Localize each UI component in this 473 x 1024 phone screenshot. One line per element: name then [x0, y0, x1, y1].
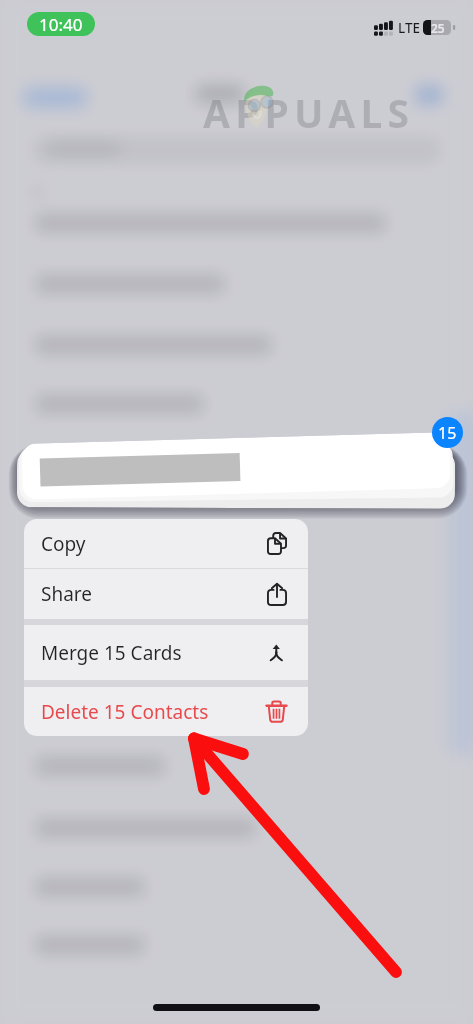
- staticText: Merge 15 Cards: [41, 640, 182, 666]
- button[interactable]: Copy: [24, 519, 308, 568]
- staticText: Copy: [41, 531, 86, 557]
- staticText: 15: [438, 422, 457, 444]
- button[interactable]: Merge 15 Cards: [24, 625, 308, 680]
- other: 15 selected: [432, 417, 463, 448]
- staticText: Delete 15 Contacts: [41, 699, 209, 725]
- staticText: APPUALS: [203, 86, 415, 139]
- staticText: 10:40: [39, 13, 83, 36]
- staticText: LTE: [398, 19, 421, 37]
- staticText: Share: [41, 581, 93, 607]
- button[interactable]: Share: [24, 569, 308, 619]
- button[interactable]: Delete 15 Contacts: [24, 687, 308, 736]
- button[interactable]: [21, 432, 451, 500]
- staticText: 25: [431, 20, 445, 35]
